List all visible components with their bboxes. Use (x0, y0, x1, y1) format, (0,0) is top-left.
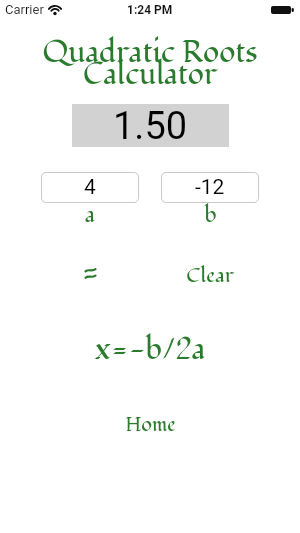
button[interactable] (41, 264, 139, 288)
staticText: Clear (186, 261, 234, 290)
staticText: b (204, 200, 217, 230)
staticText: 4 (84, 175, 96, 200)
staticText: Quadratic Roots Calculator (0, 32, 300, 95)
button[interactable]: Home (125, 411, 176, 439)
staticText: 1.50 (113, 104, 188, 147)
staticText: Home (125, 411, 176, 439)
button[interactable]: 4 (41, 172, 139, 203)
button[interactable]: -12 (161, 172, 259, 203)
staticText: Carrier (5, 2, 44, 17)
staticText: 1:24 PM (127, 3, 173, 17)
staticText: -12 (195, 175, 225, 200)
button[interactable]: Clear (161, 261, 259, 290)
staticText: a (85, 200, 95, 230)
staticText: x=-b/2a (0, 329, 300, 371)
